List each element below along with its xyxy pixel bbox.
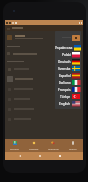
button[interactable]: Navigation menu [7,27,10,30]
button[interactable] [5,64,83,74]
staticText: Polski [62,53,71,57]
button[interactable]: Recent apps [59,155,61,157]
staticText: Moments [48,147,59,150]
button[interactable]: Svenska [55,65,81,72]
button[interactable]: Weather [24,139,43,152]
button[interactable]: English [55,100,81,107]
button[interactable] [5,84,83,94]
button[interactable]: Back [18,154,22,158]
staticText: Українська [55,46,73,50]
button[interactable]: Deutsch [55,58,81,65]
button[interactable] [5,114,83,124]
staticText: English [59,102,71,106]
staticText: Pictures [10,147,19,150]
button[interactable] [5,31,83,43]
button[interactable]: Українська [55,44,81,51]
staticText: Italiano [59,81,71,85]
button[interactable] [55,31,81,44]
staticText: Español [59,74,71,78]
button[interactable] [5,94,83,104]
button[interactable]: Français [55,86,81,93]
staticText: Weather [29,147,39,150]
staticText: Deutsch [58,60,71,64]
button[interactable]: Pictures [5,139,24,152]
staticText: Français [58,88,71,92]
button[interactable]: Search [63,139,83,152]
staticText: Search [69,147,77,150]
button[interactable]: Moments [43,139,63,152]
staticText: Türkçe [60,95,71,99]
staticText: Svenska [58,67,71,71]
button[interactable] [5,74,83,84]
button[interactable]: Español [55,72,81,79]
button[interactable] [5,49,83,58]
button[interactable]: Türkçe [55,93,81,100]
button[interactable] [5,104,83,114]
button[interactable]: Italiano [55,79,81,86]
button[interactable]: Polski [55,51,81,58]
